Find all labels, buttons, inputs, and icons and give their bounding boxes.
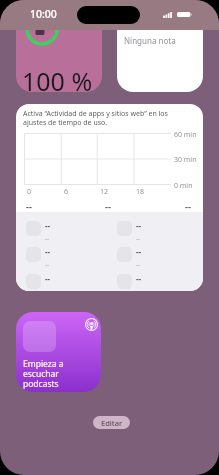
staticText: -- [45, 234, 50, 243]
button[interactable]: -- [107, 238, 198, 264]
staticText: 6 [64, 187, 69, 197]
staticText: 0 [27, 187, 32, 197]
staticText: -- [136, 260, 141, 269]
staticText: 100 % [22, 64, 93, 92]
button[interactable]: Podcasts [16, 312, 101, 392]
other: Podcasts [85, 318, 98, 331]
staticText: -- [45, 273, 51, 284]
staticText: -- [185, 200, 191, 212]
staticText: 0 min [174, 181, 193, 191]
staticText: Ninguna nota [124, 35, 176, 46]
staticText: -- [136, 220, 142, 231]
staticText: Editar [101, 418, 123, 428]
staticText: Activa “Actividad de apps y sitios web” … [23, 109, 185, 127]
staticText: -- [45, 260, 50, 269]
staticText: -- [26, 200, 32, 212]
staticText: -- [136, 246, 142, 257]
button[interactable]: -- [16, 212, 107, 238]
staticText: -- [45, 246, 51, 257]
button[interactable]: -- [107, 265, 198, 291]
staticText: 60 min [174, 130, 197, 140]
button[interactable]: Ninguna nota [117, 30, 203, 92]
staticText: 18 [136, 187, 145, 197]
staticText: Empieza a escuchar podcasts [23, 358, 95, 390]
button[interactable]: -- [16, 238, 107, 264]
staticText: -- [136, 273, 142, 284]
staticText: -- [45, 220, 51, 231]
button[interactable]: Activa “Actividad de apps y sitios web” … [16, 104, 203, 291]
button[interactable]: -- [16, 265, 107, 291]
staticText: 10:00 [30, 7, 57, 21]
staticText: -- [136, 234, 141, 243]
button[interactable]: -- [107, 212, 198, 238]
button[interactable]: Editar [93, 416, 130, 429]
staticText: 12 [100, 187, 109, 197]
button[interactable]: 100 % [16, 30, 102, 92]
staticText: -- [105, 200, 111, 212]
staticText: 30 min [174, 155, 197, 165]
